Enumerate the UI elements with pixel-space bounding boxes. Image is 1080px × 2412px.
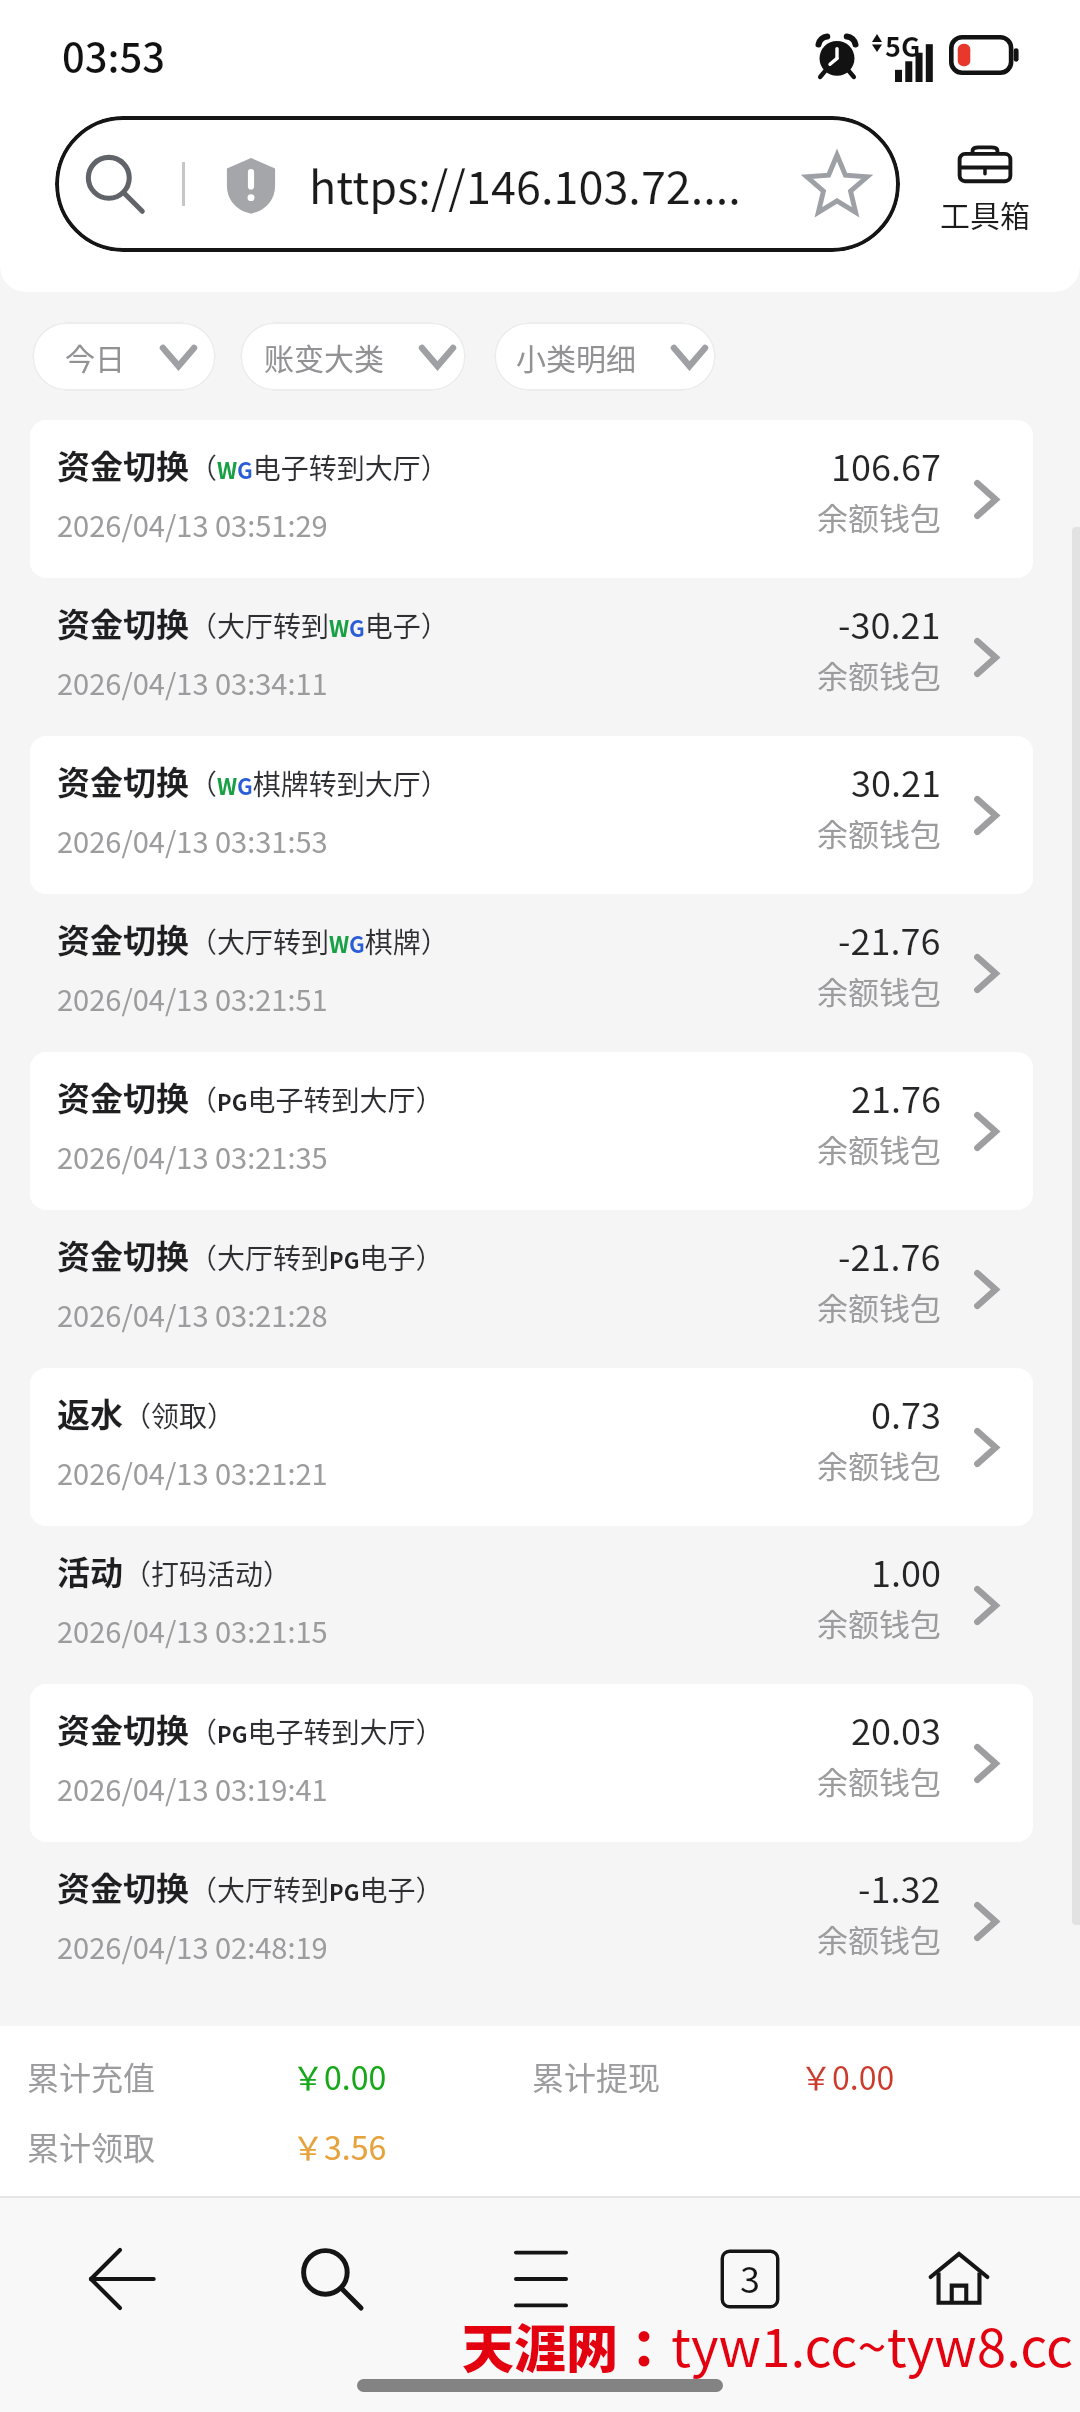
staticText: 余额钱包 [817, 1916, 941, 1961]
staticText: 2026/04/13 03:34:11 [57, 661, 328, 703]
button[interactable]: Back [17, 2224, 227, 2334]
staticText: ￥0.00 [292, 2053, 532, 2099]
button[interactable]: Menu [436, 2224, 645, 2334]
staticText: 余额钱包 [817, 1600, 941, 1645]
button[interactable]: Home [854, 2224, 1063, 2334]
staticText: -1.32 [858, 1861, 941, 1913]
staticText: ￥3.56 [292, 2123, 387, 2169]
staticText: 余额钱包 [817, 494, 941, 539]
staticText: 2026/04/13 03:21:15 [57, 1609, 328, 1651]
staticText: 余额钱包 [817, 1758, 941, 1803]
button[interactable]: 资金切换（PG电子转到大厅） [57, 1684, 998, 1842]
button[interactable]: 账变大类 [240, 322, 466, 391]
staticText: 21.76 [851, 1071, 941, 1123]
staticText: 返水（领取） [57, 1389, 236, 1437]
button[interactable]: Tabs: 3 open [645, 2224, 854, 2334]
button[interactable]: 资金切换（WG电子转到大厅） [57, 420, 998, 578]
button[interactable]: 资金切换（大厅转到WG棋牌） [57, 894, 998, 1052]
button[interactable]: 活动（打码活动） [57, 1526, 998, 1684]
staticText: 天涯网： [462, 2308, 671, 2383]
button[interactable]: 今日 [32, 322, 216, 391]
staticText: 余额钱包 [817, 652, 941, 697]
staticText: 小类明细 [516, 335, 636, 378]
staticText: 1.00 [871, 1545, 941, 1597]
staticText: -21.76 [838, 913, 941, 965]
button[interactable]: 小类明细 [494, 322, 716, 391]
staticText: 余额钱包 [817, 1126, 941, 1171]
staticText: 资金切换（PG电子转到大厅） [57, 1705, 444, 1753]
staticText: tyw1.cc~tyw8.cc [671, 2306, 1074, 2383]
staticText: 2026/04/13 03:21:21 [57, 1451, 328, 1493]
button[interactable]: 资金切换（PG电子转到大厅） [57, 1052, 998, 1210]
staticText: 5G [885, 26, 921, 65]
button[interactable]: 工具箱 [914, 110, 1066, 258]
staticText: 0.73 [871, 1387, 941, 1439]
staticText: 资金切换（WG电子转到大厅） [57, 441, 449, 489]
staticText: ￥0.00 [800, 2053, 895, 2099]
button[interactable]: 资金切换（大厅转到PG电子） [57, 1842, 998, 2000]
staticText: 余额钱包 [817, 810, 941, 855]
staticText: 资金切换（大厅转到WG棋牌） [57, 915, 449, 963]
staticText: 资金切换（大厅转到PG电子） [57, 1231, 444, 1279]
staticText: 2026/04/13 03:21:51 [57, 977, 328, 1019]
button[interactable]: 资金切换（WG棋牌转到大厅） [57, 736, 998, 894]
staticText: 2026/04/13 03:21:28 [57, 1293, 328, 1335]
staticText: 2026/04/13 03:51:29 [57, 503, 328, 545]
staticText: 今日 [65, 335, 125, 378]
staticText: 2026/04/13 03:19:41 [57, 1767, 328, 1809]
staticText: 2026/04/13 02:48:19 [57, 1925, 328, 1967]
staticText: 余额钱包 [817, 1284, 941, 1329]
button[interactable]: https://146.103.72.... [55, 116, 900, 252]
staticText: 活动（打码活动） [57, 1547, 292, 1595]
staticText: 资金切换（大厅转到PG电子） [57, 1863, 444, 1911]
staticText: 累计充值 [27, 2053, 292, 2099]
staticText: 30.21 [851, 755, 941, 807]
staticText: 3 [740, 2251, 760, 2303]
button[interactable]: 资金切换（大厅转到PG电子） [57, 1210, 998, 1368]
button[interactable]: Search [227, 2224, 436, 2334]
staticText: 累计领取 [27, 2123, 292, 2169]
staticText: 2026/04/13 03:21:35 [57, 1135, 328, 1177]
staticText: 03:53 [62, 26, 166, 84]
staticText: 余额钱包 [817, 1442, 941, 1487]
staticText: 账变大类 [264, 335, 384, 378]
staticText: 工具箱 [940, 192, 1030, 235]
button[interactable]: 返水（领取） [57, 1368, 998, 1526]
staticText: 资金切换（WG棋牌转到大厅） [57, 757, 449, 805]
staticText: 资金切换（PG电子转到大厅） [57, 1073, 444, 1121]
staticText: 20.03 [851, 1703, 941, 1755]
staticText: https://146.103.72.... [309, 152, 741, 217]
staticText: 2026/04/13 03:31:53 [57, 819, 328, 861]
staticText: 资金切换（大厅转到WG电子） [57, 599, 449, 647]
staticText: 106.67 [831, 439, 941, 491]
staticText: -30.21 [838, 597, 941, 649]
staticText: 余额钱包 [817, 968, 941, 1013]
staticText: 累计提现 [532, 2053, 800, 2099]
staticText: -21.76 [838, 1229, 941, 1281]
button[interactable]: 资金切换（大厅转到WG电子） [57, 578, 998, 736]
